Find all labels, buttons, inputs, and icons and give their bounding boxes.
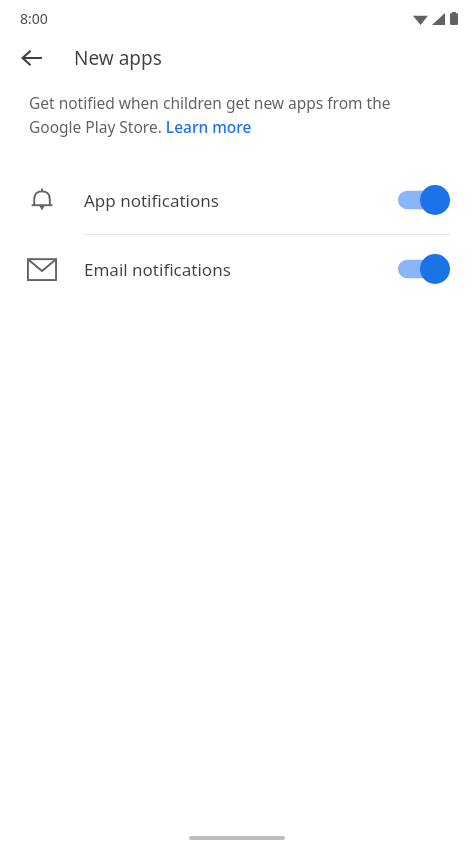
button[interactable]: Back	[10, 36, 54, 80]
button[interactable]: Email notifications toggle	[398, 254, 450, 284]
button[interactable]: Email notifications	[0, 235, 473, 303]
button[interactable]: App notifications toggle	[398, 185, 450, 215]
button[interactable]: App notifications	[0, 166, 473, 234]
staticText: New apps	[74, 45, 162, 71]
staticText: App notifications	[84, 189, 398, 212]
staticText: Email notifications	[84, 258, 398, 281]
staticText: 8:00	[20, 9, 48, 28]
staticText: Get notified when children get new apps …	[29, 92, 439, 137]
